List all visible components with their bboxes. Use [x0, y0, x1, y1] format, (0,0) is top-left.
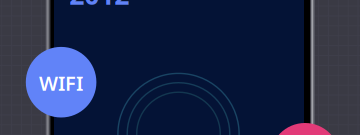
staticText: 2012 — [69, 0, 129, 12]
staticText: WIFI — [39, 70, 83, 96]
